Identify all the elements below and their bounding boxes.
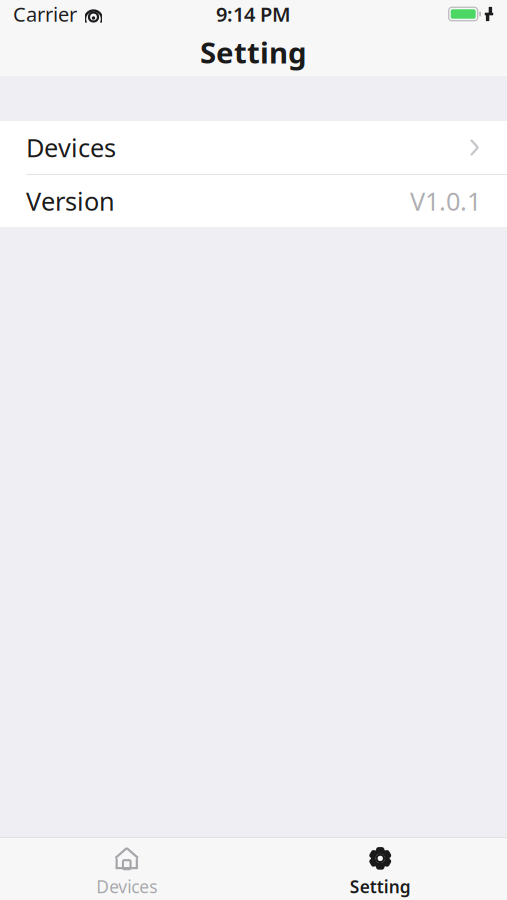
staticText: Carrier (13, 1, 77, 27)
button[interactable]: Devices (0, 121, 507, 174)
button[interactable]: Setting (253, 838, 507, 900)
button[interactable]: Devices (0, 838, 253, 900)
staticText: Setting (350, 875, 411, 898)
staticText: Devices (96, 875, 157, 898)
staticText: V1.0.1 (410, 184, 481, 218)
staticText: 9:14 PM (216, 1, 291, 27)
staticText: Version (26, 184, 115, 218)
staticText: Devices (26, 131, 116, 164)
staticText: Setting (200, 32, 307, 71)
